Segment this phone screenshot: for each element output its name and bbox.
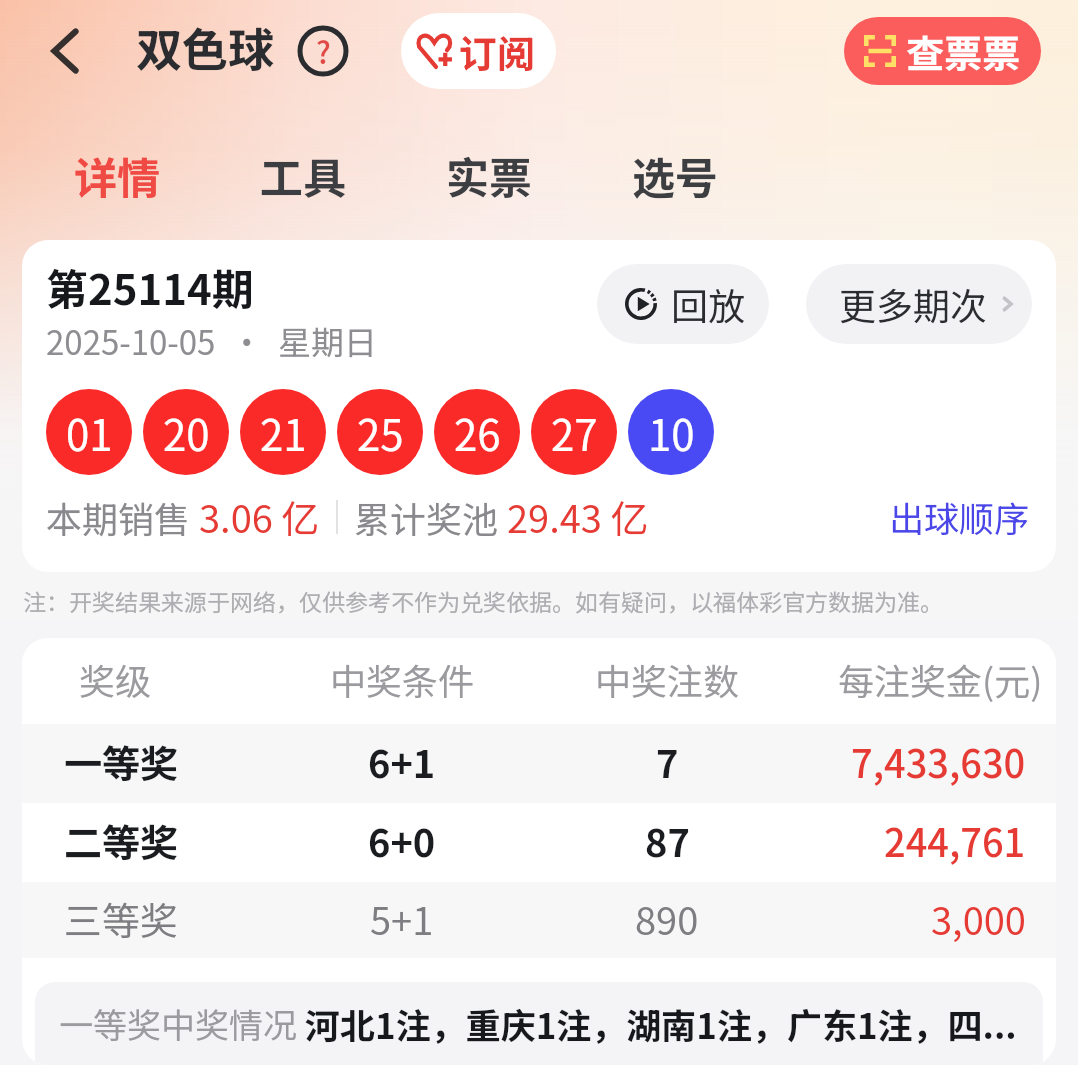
button[interactable]: 详情 bbox=[24, 101, 210, 240]
staticText: 中奖条件 bbox=[330, 653, 475, 705]
staticText: 27 bbox=[551, 402, 598, 463]
staticText: 二等奖 bbox=[64, 813, 179, 868]
staticText: 21 bbox=[260, 402, 307, 463]
staticText: 5+1 bbox=[370, 891, 434, 946]
button[interactable]: 更多期次 bbox=[806, 264, 1032, 344]
button[interactable]: 二等奖 bbox=[22, 803, 1056, 882]
staticText: 6+0 bbox=[368, 813, 436, 868]
staticText: 244,761 bbox=[884, 813, 1026, 868]
button[interactable]: Back bbox=[34, 20, 96, 82]
button[interactable]: 一等奖 bbox=[22, 724, 1056, 803]
staticText: 01 bbox=[66, 402, 113, 463]
button[interactable]: 奖级 bbox=[22, 638, 1056, 724]
staticText: ? bbox=[316, 29, 331, 72]
staticText: 一等奖中奖情况 bbox=[59, 999, 305, 1048]
staticText: 20 bbox=[163, 402, 210, 463]
staticText: 7 bbox=[656, 734, 679, 789]
staticText: 每注奖金(元) bbox=[838, 653, 1043, 705]
staticText: 中奖注数 bbox=[595, 653, 740, 705]
staticText: 3.06 亿 bbox=[199, 489, 320, 544]
staticText: 6+1 bbox=[368, 734, 436, 789]
staticText: 87 bbox=[645, 813, 690, 868]
button[interactable]: 选号 bbox=[582, 101, 768, 240]
staticText: 实票 bbox=[446, 144, 532, 197]
staticText: 出球顺序 bbox=[889, 491, 1030, 542]
staticText: 查票票 bbox=[906, 24, 1021, 79]
staticText: 工具 bbox=[260, 144, 346, 197]
staticText: 河北1注，重庆1注，湖南1注，广东1注，四... bbox=[305, 998, 1017, 1049]
button[interactable]: Help bbox=[297, 25, 349, 77]
button[interactable]: 实票 bbox=[396, 101, 582, 240]
staticText: 3,000 bbox=[931, 891, 1026, 946]
staticText: 三等奖 bbox=[64, 891, 179, 946]
staticText: 累计奖池 bbox=[354, 491, 507, 543]
staticText: 890 bbox=[635, 891, 699, 946]
staticText: 订阅 bbox=[459, 24, 536, 79]
staticText: 25 bbox=[357, 402, 404, 463]
button[interactable]: 三等奖 bbox=[22, 882, 1056, 958]
staticText: 注：开奖结果来源于网络，仅供参考不作为兑奖依据。如有疑问，以福体彩官方数据为准。 bbox=[23, 584, 943, 617]
staticText: 2025-10-05 · 星期日 bbox=[46, 317, 377, 365]
staticText: 29.43 亿 bbox=[507, 489, 649, 544]
button[interactable]: 回放 bbox=[597, 264, 769, 344]
staticText: 一等奖 bbox=[64, 734, 179, 789]
button[interactable]: 出球顺序 bbox=[885, 487, 1034, 546]
staticText: 26 bbox=[454, 402, 501, 463]
staticText: 7,433,630 bbox=[851, 734, 1026, 789]
staticText: 回放 bbox=[671, 277, 745, 331]
staticText: 奖级 bbox=[79, 653, 152, 705]
staticText: 10 bbox=[648, 402, 695, 463]
staticText: 选号 bbox=[632, 144, 718, 197]
button[interactable]: 一等奖中奖情况 bbox=[35, 982, 1043, 1065]
button[interactable]: 订阅 bbox=[401, 13, 556, 89]
staticText: 更多期次 bbox=[839, 277, 987, 331]
button[interactable]: 查票票 bbox=[844, 17, 1041, 85]
button[interactable]: 工具 bbox=[210, 101, 396, 240]
staticText: 双色球 bbox=[136, 14, 274, 81]
staticText: 第25114期 bbox=[46, 256, 254, 317]
staticText: 详情 bbox=[74, 144, 160, 197]
staticText: 本期销售 bbox=[46, 491, 199, 543]
